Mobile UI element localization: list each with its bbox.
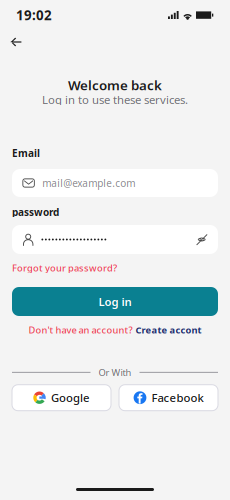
button[interactable]: Don't have an account? [0,325,230,335]
staticText: Email [12,146,40,160]
staticText: Google [51,390,90,405]
staticText: Forgot your password? [12,262,117,274]
button[interactable]: Show password [195,233,208,246]
staticText: Welcome back [68,76,162,94]
staticText: Create accont [135,324,201,336]
button[interactable]: Back [0,35,38,49]
button[interactable]: Log in [0,287,230,316]
staticText: password [12,205,59,219]
button[interactable]: Google [12,385,111,411]
staticText: Don't have an account? [28,324,132,336]
staticText: Log in to use these services. [42,92,188,107]
button[interactable]: Forgot your password? [0,263,117,273]
staticText: mail@example.com [42,176,135,190]
button[interactable]: Facebook [119,385,218,411]
staticText: Facebook [151,390,203,405]
staticText: 19:02 [16,6,52,24]
staticText: Log in [98,294,131,309]
staticText: Or With [98,366,131,379]
